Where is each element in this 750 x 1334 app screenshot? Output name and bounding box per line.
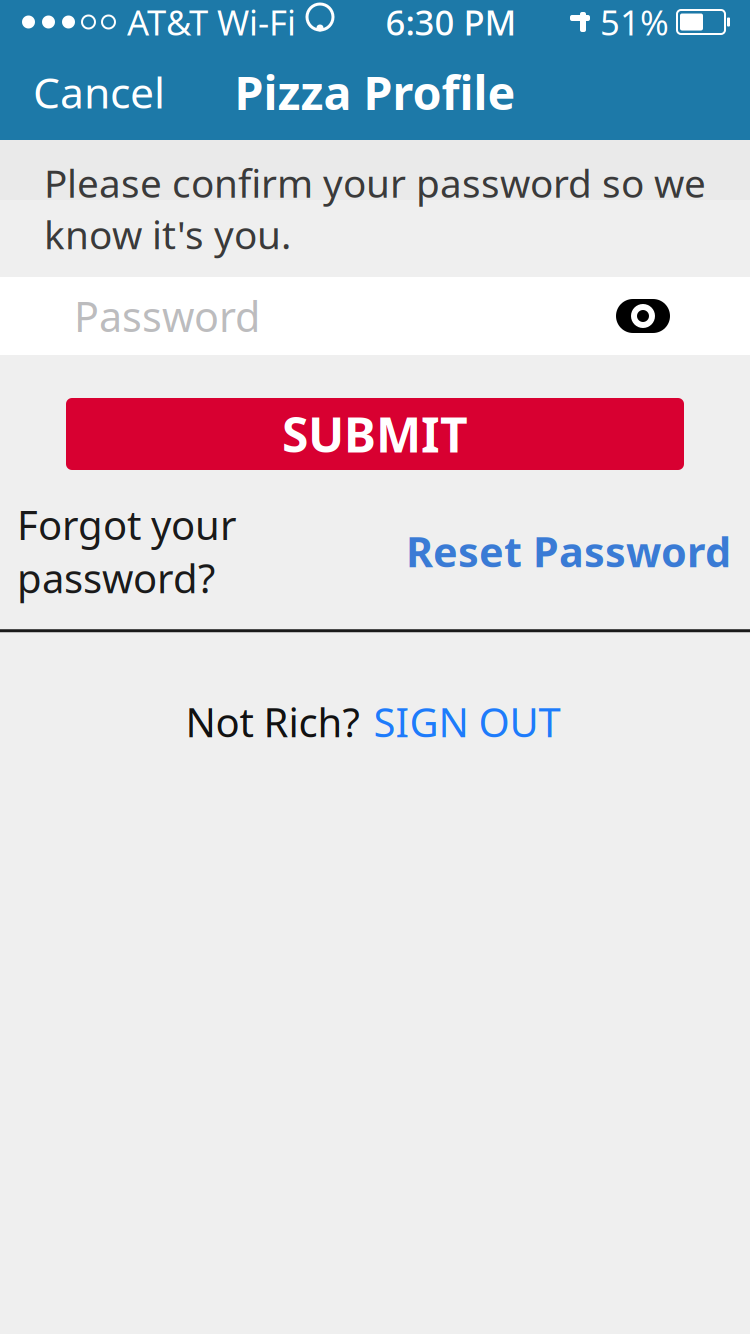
staticText: Reset Password	[406, 524, 731, 579]
staticText: Pizza Profile	[234, 61, 515, 123]
staticText: 6:30 PM	[385, 0, 516, 45]
staticText: Cancel	[33, 64, 165, 120]
staticText: Please confirm your password so we know …	[44, 157, 706, 260]
button[interactable]: Show password	[592, 283, 694, 349]
staticText: Not Rich?	[185, 695, 359, 748]
staticText: SIGN OUT	[373, 695, 560, 748]
staticText: Forgot your password?	[17, 498, 237, 604]
staticText: AT&T Wi-Fi	[127, 0, 296, 45]
button[interactable]: SUBMIT	[66, 398, 684, 470]
button[interactable]: Cancel	[17, 50, 181, 134]
button[interactable]: Reset Password	[400, 516, 737, 587]
staticText: 51%	[600, 0, 669, 45]
staticText: SUBMIT	[282, 402, 468, 466]
staticText: Password	[74, 289, 260, 343]
button[interactable]: SIGN OUT	[369, 689, 564, 754]
